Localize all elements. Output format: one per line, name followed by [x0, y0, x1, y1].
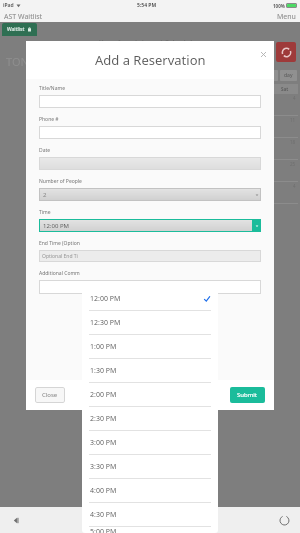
staticText: day: [284, 72, 293, 79]
button[interactable]: day: [280, 70, 297, 81]
staticText: 18: [290, 139, 296, 145]
button[interactable]: 4:30 PM: [82, 503, 218, 527]
staticText: End Time (Option: [39, 240, 80, 247]
staticText: Submit: [237, 391, 258, 399]
button[interactable]: Refresh: [276, 42, 296, 62]
button[interactable]: [39, 126, 261, 139]
button[interactable]: [39, 280, 261, 294]
button[interactable]: 2:30 PM: [82, 407, 218, 431]
button[interactable]: Optional End Ti: [39, 250, 261, 262]
staticText: Optional End Ti: [42, 253, 78, 260]
button[interactable]: [39, 95, 261, 108]
staticText: 4: [293, 95, 296, 101]
button[interactable]: Close: [258, 49, 268, 59]
staticText: TON: [6, 54, 29, 69]
button[interactable]: 12:00 PM: [39, 219, 261, 232]
staticText: Waitlist: [7, 26, 25, 33]
button[interactable]: 1:30 PM: [82, 359, 218, 383]
staticText: 4:30 PM: [90, 510, 117, 520]
button[interactable]: 3:30 PM: [82, 455, 218, 479]
staticText: Date: [39, 147, 51, 154]
staticText: Additional Comm: [39, 270, 80, 277]
staticText: 25: [290, 161, 296, 167]
staticText: Title/Name: [39, 85, 65, 92]
button[interactable]: 3:00 PM: [82, 431, 218, 455]
staticText: Sat: [281, 86, 289, 92]
staticText: 12:00 PM: [43, 222, 69, 230]
button[interactable]: 1:00 PM: [82, 335, 218, 359]
staticText: 2: [43, 191, 47, 199]
button[interactable]: Submit: [230, 387, 265, 403]
staticText: 100%: [273, 3, 285, 9]
staticText: iPad: [3, 2, 14, 9]
staticText: 4: [293, 183, 296, 189]
staticText: Your Appointment Schedules: [99, 38, 201, 48]
staticText: Menu: [277, 12, 296, 22]
staticText: 1:30 PM: [90, 366, 117, 376]
staticText: Close: [42, 391, 58, 399]
staticText: 2:00 PM: [90, 390, 117, 400]
staticText: 3:30 PM: [90, 462, 117, 472]
staticText: 5:00 PM: [90, 527, 117, 533]
staticText: AST Waitlist: [4, 12, 43, 22]
button[interactable]: 2: [39, 188, 261, 201]
button[interactable]: Close: [35, 387, 65, 403]
staticText: Phone #: [39, 116, 59, 123]
staticText: 3:00 PM: [90, 438, 117, 448]
button[interactable]: Back: [8, 512, 24, 528]
staticText: 5:54 PM: [137, 2, 157, 9]
staticText: 12:00 PM: [90, 294, 121, 304]
staticText: 12:30 PM: [90, 318, 121, 328]
button[interactable]: 2:00 PM: [82, 383, 218, 407]
staticText: 4:00 PM: [90, 486, 117, 496]
button[interactable]: 5:00 PM: [82, 527, 218, 533]
button[interactable]: Menu: [277, 12, 296, 22]
staticText: Number of People: [39, 178, 82, 185]
button[interactable]: 4:00 PM: [82, 479, 218, 503]
staticText: 2:30 PM: [90, 414, 117, 424]
button[interactable]: 12:00 PM: [82, 287, 218, 311]
button[interactable]: Waitlist: [2, 23, 37, 36]
staticText: Add a Reservation: [95, 51, 206, 69]
staticText: 1:00 PM: [90, 342, 117, 352]
button[interactable]: eek: [261, 70, 278, 81]
staticText: Time: [39, 209, 51, 216]
button[interactable]: 12:30 PM: [82, 311, 218, 335]
button[interactable]: [39, 157, 261, 170]
button[interactable]: Reload: [276, 512, 292, 528]
